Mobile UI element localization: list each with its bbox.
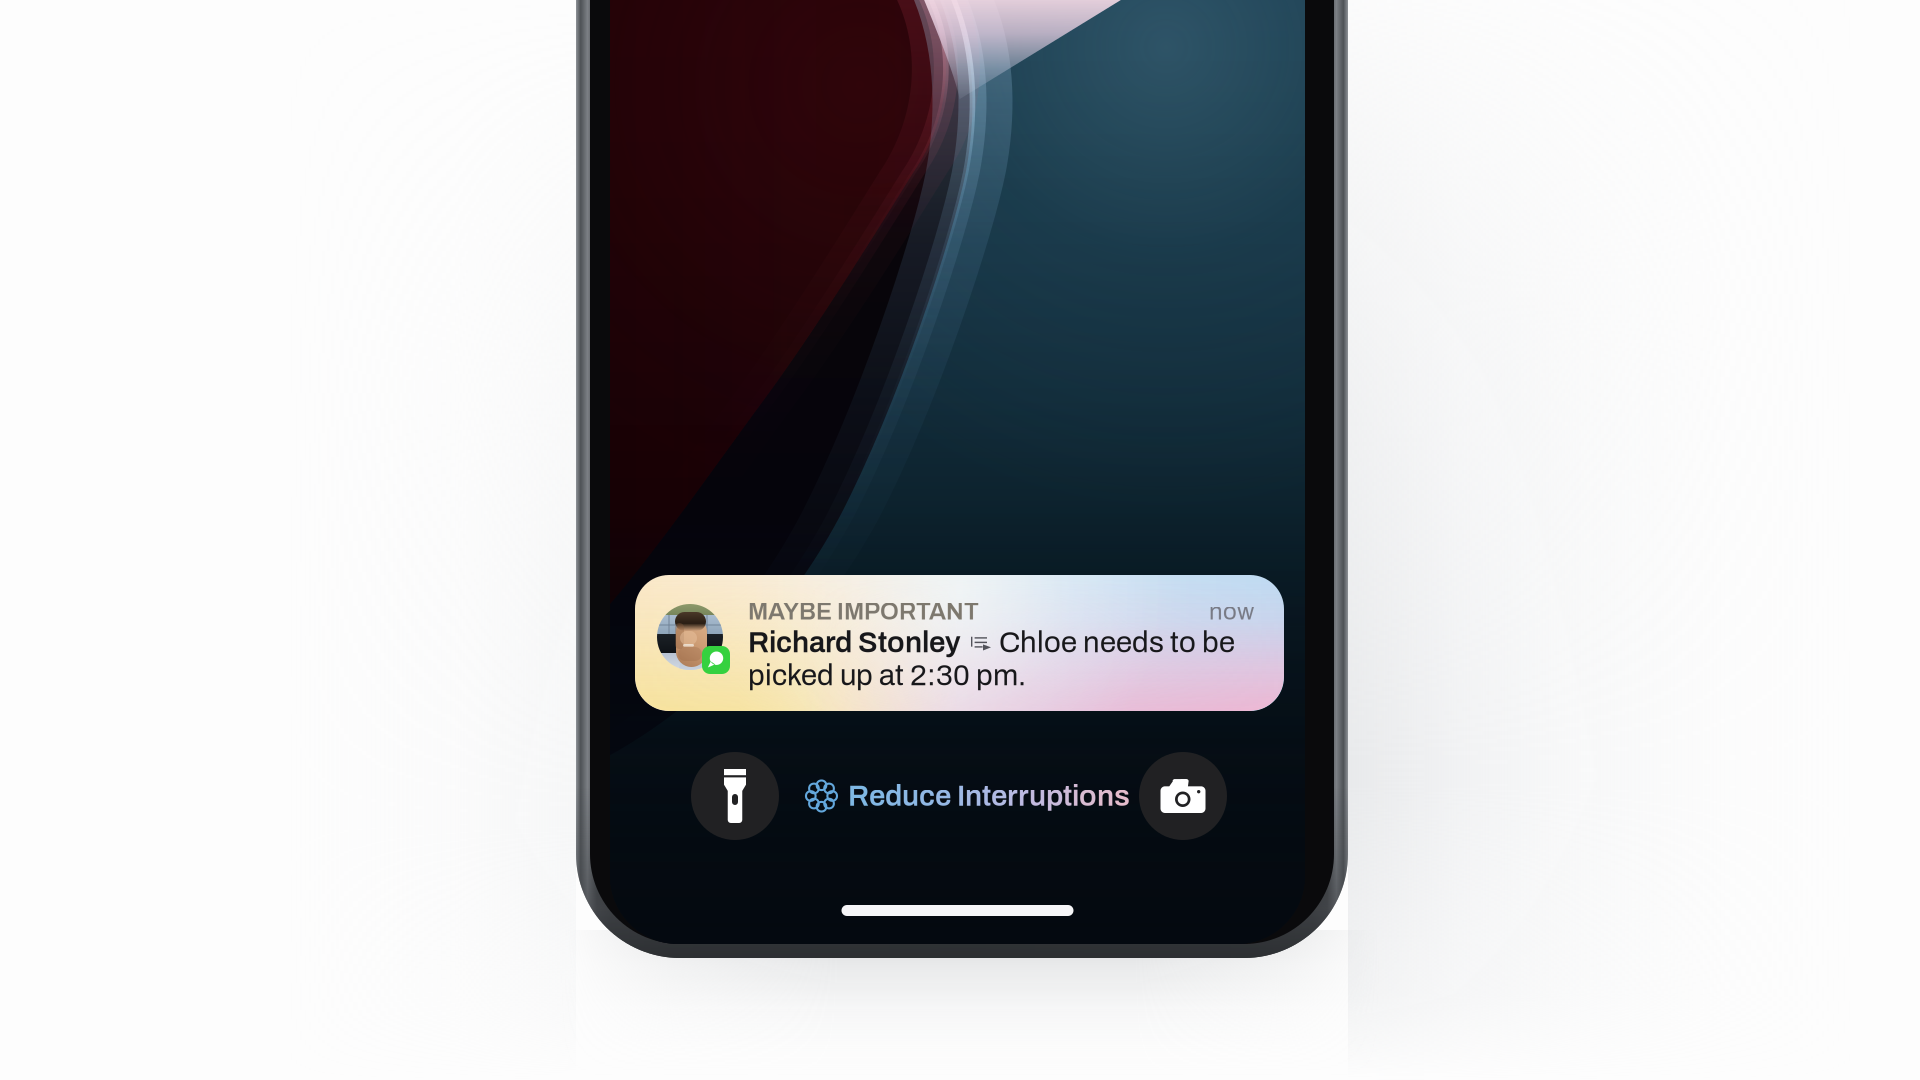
staticText: r <box>1018 780 1029 812</box>
staticText: s <box>1114 780 1130 812</box>
staticText: o <box>1079 780 1097 812</box>
button[interactable]: R <box>806 773 1130 819</box>
staticText: now <box>1209 598 1254 624</box>
staticText: I <box>957 780 965 812</box>
staticText: R <box>848 780 869 812</box>
staticText: u <box>902 780 919 812</box>
staticText: t <box>1063 780 1072 812</box>
staticText: t <box>982 780 991 812</box>
staticText: e <box>869 780 885 812</box>
button[interactable]: Flashlight <box>691 752 779 840</box>
staticText: p <box>1046 780 1063 812</box>
staticText: Chloe needs to be <box>999 626 1235 658</box>
staticText: e <box>935 780 951 812</box>
staticText: c <box>919 780 935 812</box>
staticText: picked up at 2:30 pm. <box>748 659 1026 691</box>
staticText: i <box>1072 780 1079 812</box>
staticText: d <box>885 780 902 812</box>
staticText: Richard Stonley <box>748 626 961 658</box>
staticText: r <box>1007 780 1018 812</box>
staticText: e <box>991 780 1007 812</box>
staticText: MAYBE IMPORTANT <box>748 598 979 624</box>
staticText: n <box>965 780 982 812</box>
button[interactable]: Camera <box>1139 752 1227 840</box>
staticText: u <box>1029 780 1046 812</box>
staticText: n <box>1097 780 1114 812</box>
button[interactable]: MAYBE IMPORTANT <box>635 575 1284 711</box>
